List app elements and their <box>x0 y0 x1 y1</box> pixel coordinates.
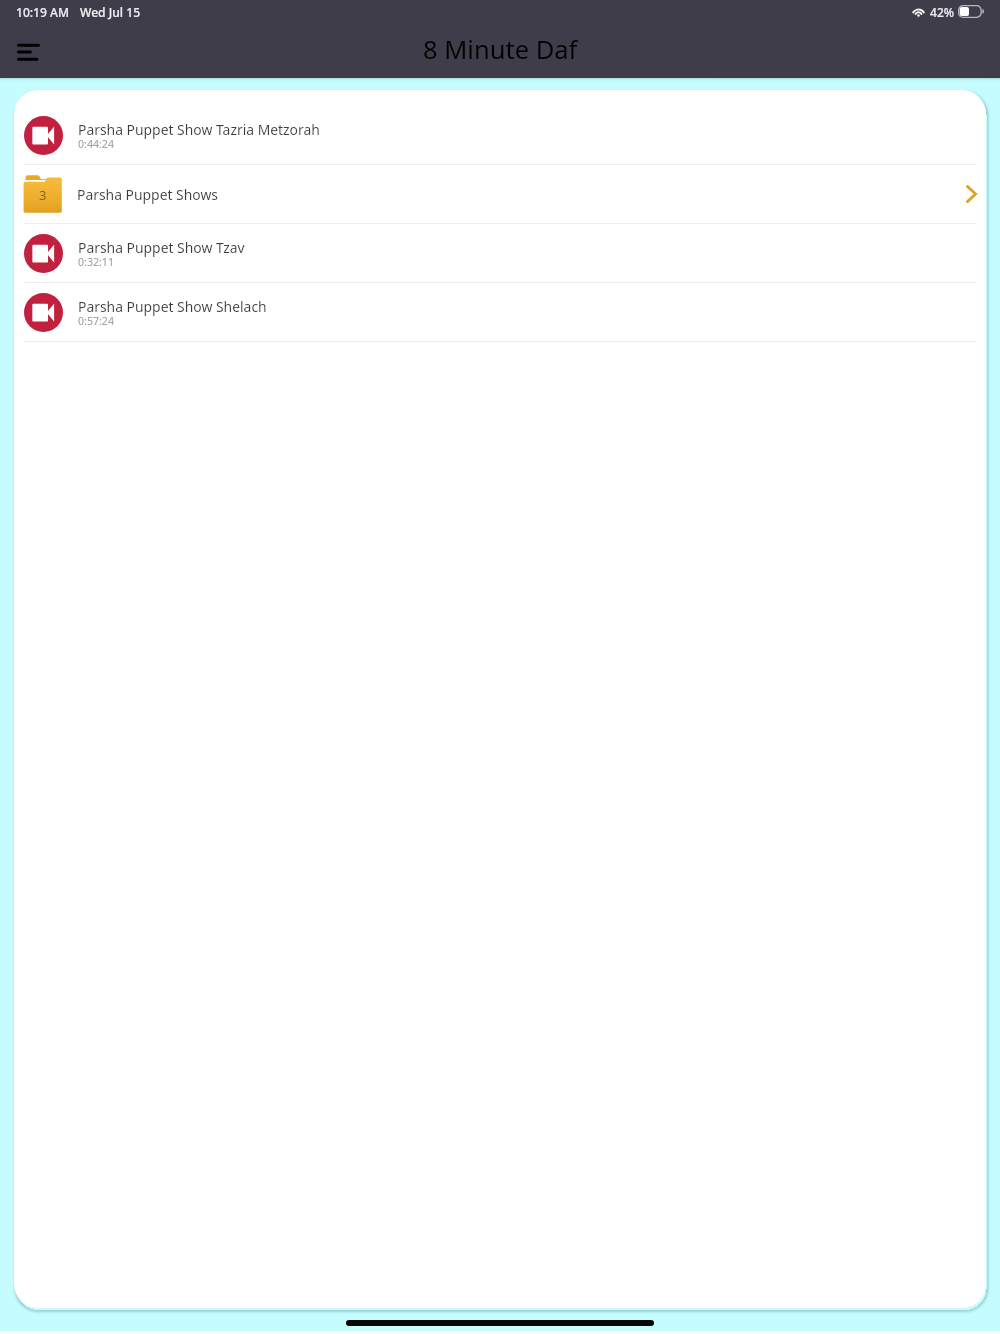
staticText: Wed Jul 15 <box>80 4 141 20</box>
staticText: 3 <box>39 186 47 204</box>
button[interactable]: Parsha Puppet Show Shelach <box>14 283 986 341</box>
staticText: Parsha Puppet Show Shelach <box>78 297 267 316</box>
staticText: 0:44:24 <box>78 137 114 151</box>
staticText: 8 Minute Daf <box>423 32 578 67</box>
button[interactable]: Parsha Puppet Show Tazria Metzorah <box>14 106 986 164</box>
staticText: 42% <box>930 4 955 20</box>
staticText: 10:19 AM <box>16 4 70 20</box>
staticText: 0:57:24 <box>78 314 114 328</box>
staticText: Parsha Puppet Show Tzav <box>78 238 245 257</box>
staticText: Parsha Puppet Shows <box>77 185 219 204</box>
button[interactable]: Parsha Puppet Show Tzav <box>14 224 986 282</box>
button[interactable]: 3 <box>14 165 986 223</box>
staticText: Parsha Puppet Show Tazria Metzorah <box>78 120 320 139</box>
button[interactable]: Open folder <box>958 181 984 207</box>
button[interactable]: Menu <box>6 30 50 74</box>
staticText: 0:32:11 <box>78 255 114 269</box>
